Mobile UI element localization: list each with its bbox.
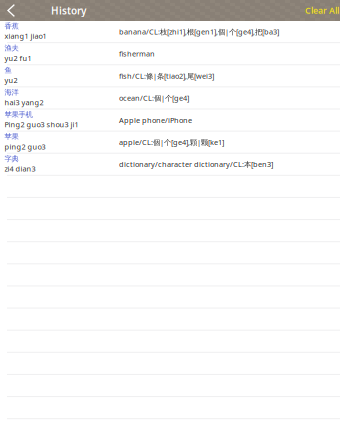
- staticText: fisherman: [119, 49, 155, 59]
- staticText: 渔夫: [4, 43, 18, 53]
- button[interactable]: [0, 353, 340, 375]
- staticText: yu2 fu1: [4, 53, 31, 63]
- button[interactable]: 海洋: [0, 87, 340, 109]
- staticText: Ping2 guo3 shou3 ji1: [4, 119, 78, 129]
- button[interactable]: Back: [0, 0, 22, 21]
- staticText: apple/CL:個|个[ge4],顆|颗[ke1]: [119, 137, 224, 147]
- button[interactable]: 苹果: [0, 132, 340, 154]
- staticText: ocean/CL:個|个[ge4]: [119, 93, 189, 103]
- button[interactable]: 渔夫: [0, 43, 340, 65]
- staticText: 字典: [4, 154, 18, 163]
- staticText: dictionary/character dictionary/CL:本[ben…: [119, 159, 273, 169]
- staticText: xiang1 jiao1: [4, 31, 46, 41]
- button[interactable]: 苹果手机: [0, 109, 340, 132]
- staticText: Clear All: [305, 5, 339, 16]
- button[interactable]: Clear All: [305, 0, 340, 21]
- staticText: 苹果手机: [4, 110, 32, 119]
- button[interactable]: [0, 198, 340, 220]
- button[interactable]: 鱼: [0, 65, 340, 87]
- staticText: 香蕉: [4, 21, 18, 31]
- button[interactable]: 字典: [0, 154, 340, 176]
- staticText: 苹果: [4, 132, 18, 141]
- staticText: History: [51, 4, 86, 17]
- button[interactable]: [0, 176, 340, 198]
- staticText: hai3 yang2: [4, 97, 43, 107]
- staticText: banana/CL:枝[zhi1],根[gen1],個|个[ge4],把[ba3…: [119, 27, 279, 37]
- staticText: Apple phone/iPhone: [119, 115, 192, 125]
- staticText: fish/CL:條|条[tiao2],尾[wei3]: [119, 71, 214, 81]
- staticText: 海洋: [4, 88, 18, 97]
- staticText: yu2: [4, 75, 17, 85]
- staticText: zi4 dian3: [4, 164, 35, 174]
- staticText: 鱼: [4, 66, 11, 75]
- button[interactable]: 香蕉: [0, 21, 340, 43]
- staticText: ping2 guo3: [4, 142, 45, 152]
- button[interactable]: [0, 375, 340, 397]
